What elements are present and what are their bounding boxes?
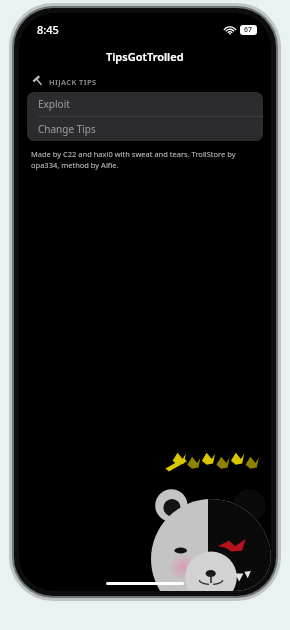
staticText: TipsGotTrolled — [106, 49, 184, 64]
staticText: HIJACK TIPS — [49, 77, 97, 87]
button[interactable]: Change Tips — [27, 117, 263, 141]
staticText: 8:45 — [37, 22, 59, 37]
staticText: 67 — [244, 25, 253, 35]
staticText: Exploit — [38, 97, 70, 111]
other: Hijack — [33, 76, 44, 87]
button[interactable]: Exploit — [27, 92, 263, 116]
staticText: Change Tips — [38, 122, 96, 136]
staticText: Made by C22 and haxi0 with sweat and tea… — [31, 149, 259, 170]
